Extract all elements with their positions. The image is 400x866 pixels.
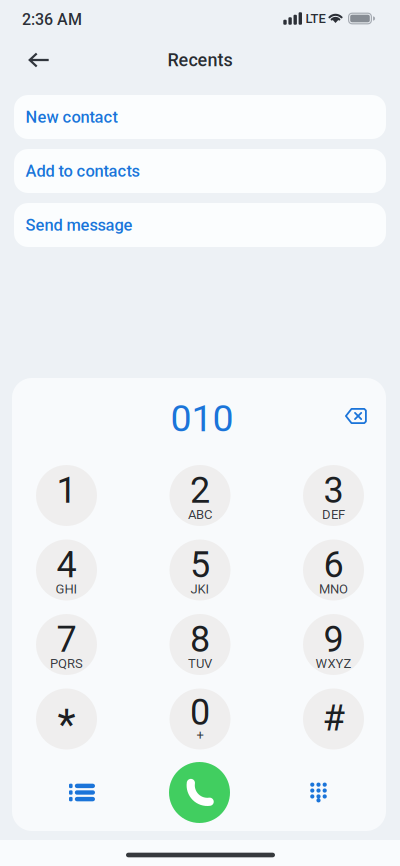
button[interactable]: 9: [303, 614, 364, 675]
staticText: 7: [56, 618, 76, 661]
staticText: 3: [323, 469, 343, 512]
button[interactable]: Call: [169, 762, 230, 823]
button[interactable]: 4: [36, 539, 97, 600]
button[interactable]: 8: [169, 614, 230, 675]
staticText: Add to contacts: [25, 161, 139, 181]
staticText: TUV: [188, 656, 212, 671]
staticText: *: [57, 700, 75, 749]
staticText: JKI: [190, 581, 209, 597]
staticText: ABC: [188, 507, 212, 522]
staticText: 0: [190, 691, 210, 734]
button[interactable]: 7: [36, 614, 97, 675]
button[interactable]: *: [36, 688, 97, 749]
button[interactable]: Hide keypad: [300, 772, 337, 812]
staticText: 6: [323, 544, 343, 586]
staticText: 9: [323, 618, 343, 661]
staticText: #: [322, 697, 344, 739]
staticText: Recents: [167, 49, 232, 71]
button[interactable]: 3: [303, 465, 364, 526]
button[interactable]: 1: [36, 465, 97, 526]
button[interactable]: Back: [18, 45, 59, 75]
button[interactable]: 5: [169, 539, 230, 600]
staticText: MNO: [319, 581, 348, 597]
staticText: 2:36 AM: [22, 10, 82, 29]
staticText: 010: [170, 396, 233, 440]
button[interactable]: Delete: [337, 400, 375, 432]
staticText: 5: [190, 544, 210, 586]
staticText: 4: [56, 544, 76, 586]
staticText: +: [196, 727, 203, 743]
staticText: Send message: [25, 215, 132, 235]
staticText: DEF: [322, 507, 345, 522]
staticText: 2: [190, 469, 210, 512]
button[interactable]: New contact: [14, 95, 386, 139]
button[interactable]: 6: [303, 539, 364, 600]
staticText: 8: [190, 618, 210, 661]
button[interactable]: Call history: [59, 774, 105, 811]
staticText: 1: [56, 469, 76, 512]
staticText: New contact: [25, 107, 117, 127]
button[interactable]: 2: [169, 465, 230, 526]
button[interactable]: Send message: [14, 203, 386, 247]
button[interactable]: Add to contacts: [14, 149, 386, 193]
staticText: PQRS: [50, 656, 83, 671]
staticText: LTE: [305, 11, 325, 26]
button[interactable]: 0: [169, 688, 230, 749]
button[interactable]: #: [303, 688, 364, 749]
staticText: GHI: [55, 581, 77, 597]
staticText: WXYZ: [315, 656, 351, 671]
